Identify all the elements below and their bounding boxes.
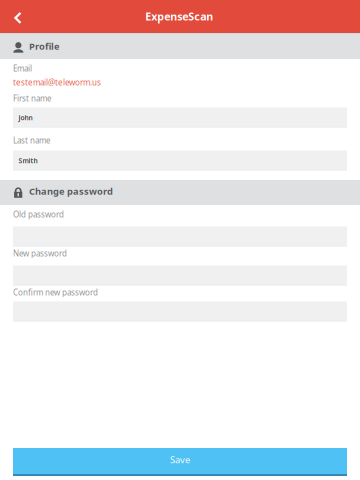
- staticText: Save: [170, 453, 190, 466]
- staticText: Smith: [18, 156, 37, 165]
- button[interactable]: Last name: [13, 150, 347, 170]
- staticText: First name: [13, 93, 52, 104]
- staticText: Old password: [13, 209, 64, 220]
- staticText: Change password: [29, 185, 113, 197]
- button[interactable]: Save: [13, 447, 347, 475]
- staticText: John: [18, 113, 32, 122]
- staticText: Email: [13, 63, 32, 74]
- button[interactable]: Email address testemail@teleworm.us: [13, 77, 101, 88]
- staticText: Last name: [13, 135, 51, 146]
- button[interactable]: First name: [13, 107, 347, 127]
- staticText: ExpenseScan: [145, 9, 213, 24]
- button[interactable]: Back: [0, 0, 30, 32]
- staticText: testemail@teleworm.us: [13, 77, 101, 88]
- staticText: Profile: [29, 40, 60, 52]
- staticText: New password: [13, 248, 67, 259]
- staticText: Confirm new password: [13, 287, 98, 298]
